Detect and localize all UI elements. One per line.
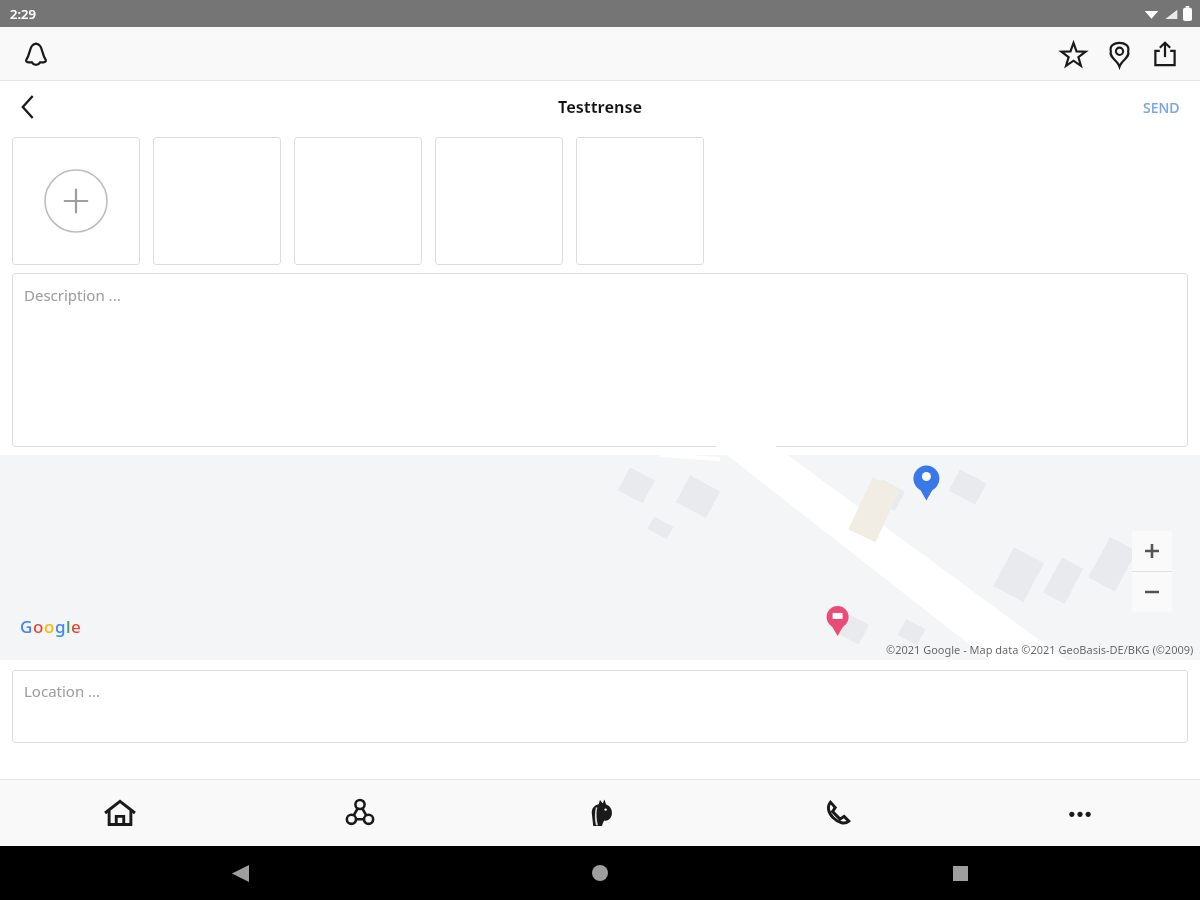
button[interactable]: Notifications xyxy=(14,32,58,76)
button[interactable]: Favorite xyxy=(1050,31,1096,77)
staticText: Location ... xyxy=(24,681,101,701)
button[interactable]: Home xyxy=(580,853,620,893)
button[interactable]: Recents xyxy=(940,853,980,893)
button[interactable]: Add photo xyxy=(12,137,140,265)
staticText: o xyxy=(33,615,44,638)
staticText: g xyxy=(55,615,66,638)
button[interactable]: Back xyxy=(220,853,260,893)
button[interactable]: Photo slot xyxy=(435,137,563,265)
button[interactable]: Contacts xyxy=(720,780,960,846)
button[interactable]: Map xyxy=(0,455,1200,660)
button[interactable]: Zoom in xyxy=(1132,531,1172,571)
staticText: ©2021 Google - Map data ©2021 GeoBasis-D… xyxy=(886,642,1194,657)
staticText: Description ... xyxy=(24,285,121,305)
button[interactable]: Back xyxy=(6,85,50,129)
button[interactable]: More xyxy=(960,780,1200,846)
button[interactable]: Zoom out xyxy=(1132,572,1172,612)
staticText: Testtrense xyxy=(558,96,642,118)
staticText: e xyxy=(71,615,81,638)
button[interactable]: Description ... xyxy=(12,273,1188,447)
staticText: 2:29 xyxy=(10,5,36,23)
button[interactable]: Horses xyxy=(480,780,720,846)
staticText: SEND xyxy=(1143,98,1180,117)
button[interactable]: Home xyxy=(0,780,240,846)
staticText: o xyxy=(44,615,55,638)
button[interactable]: Photo slot xyxy=(294,137,422,265)
staticText: l xyxy=(66,615,71,638)
button[interactable]: Location ... xyxy=(12,670,1188,743)
button[interactable]: Photo slot xyxy=(153,137,281,265)
button[interactable]: Photo slot xyxy=(576,137,704,265)
staticText: G xyxy=(20,615,33,638)
button[interactable]: SEND xyxy=(1133,90,1190,125)
button[interactable]: Network xyxy=(240,780,480,846)
button[interactable]: Location xyxy=(1096,31,1142,77)
button[interactable]: Share xyxy=(1142,31,1188,77)
